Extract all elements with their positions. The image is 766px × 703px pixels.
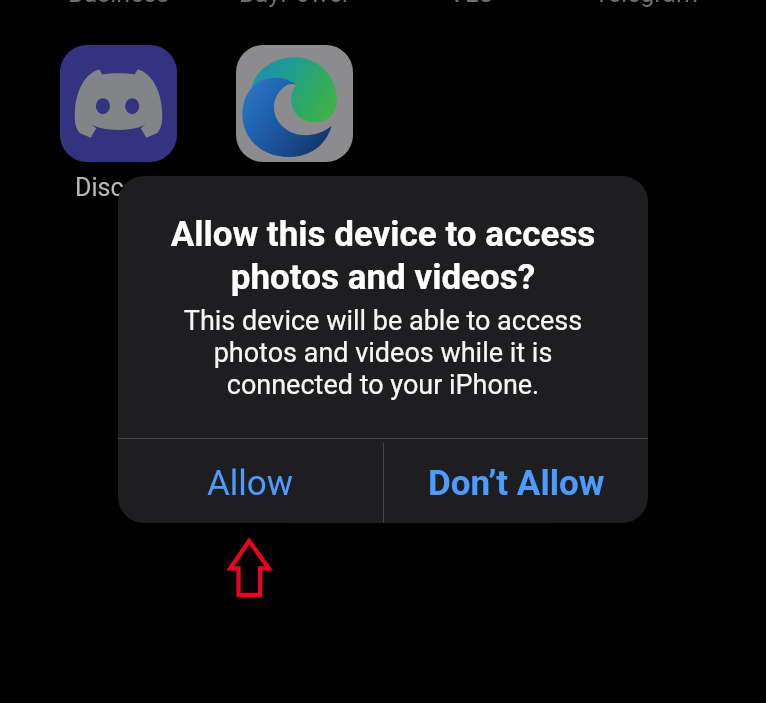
staticText: Allow this device to access photos and v…: [118, 212, 648, 298]
staticText: This device will be able to access photo…: [118, 305, 648, 401]
staticText: Business: [68, 0, 170, 8]
other: Arrow pointing to Allow: [228, 539, 271, 597]
staticText: Allow: [207, 463, 294, 504]
staticText: Don’t Allow: [428, 463, 605, 504]
staticText: Telegram: [594, 0, 698, 8]
button[interactable]: Discord: [60, 45, 177, 162]
button[interactable]: Microsoft Edge: [236, 45, 353, 162]
staticText: BuyPower: [239, 0, 351, 8]
button[interactable]: Allow: [118, 443, 383, 523]
staticText: Disc: [75, 173, 124, 202]
button[interactable]: Don’t Allow: [384, 443, 648, 523]
staticText: VLC: [449, 0, 494, 8]
